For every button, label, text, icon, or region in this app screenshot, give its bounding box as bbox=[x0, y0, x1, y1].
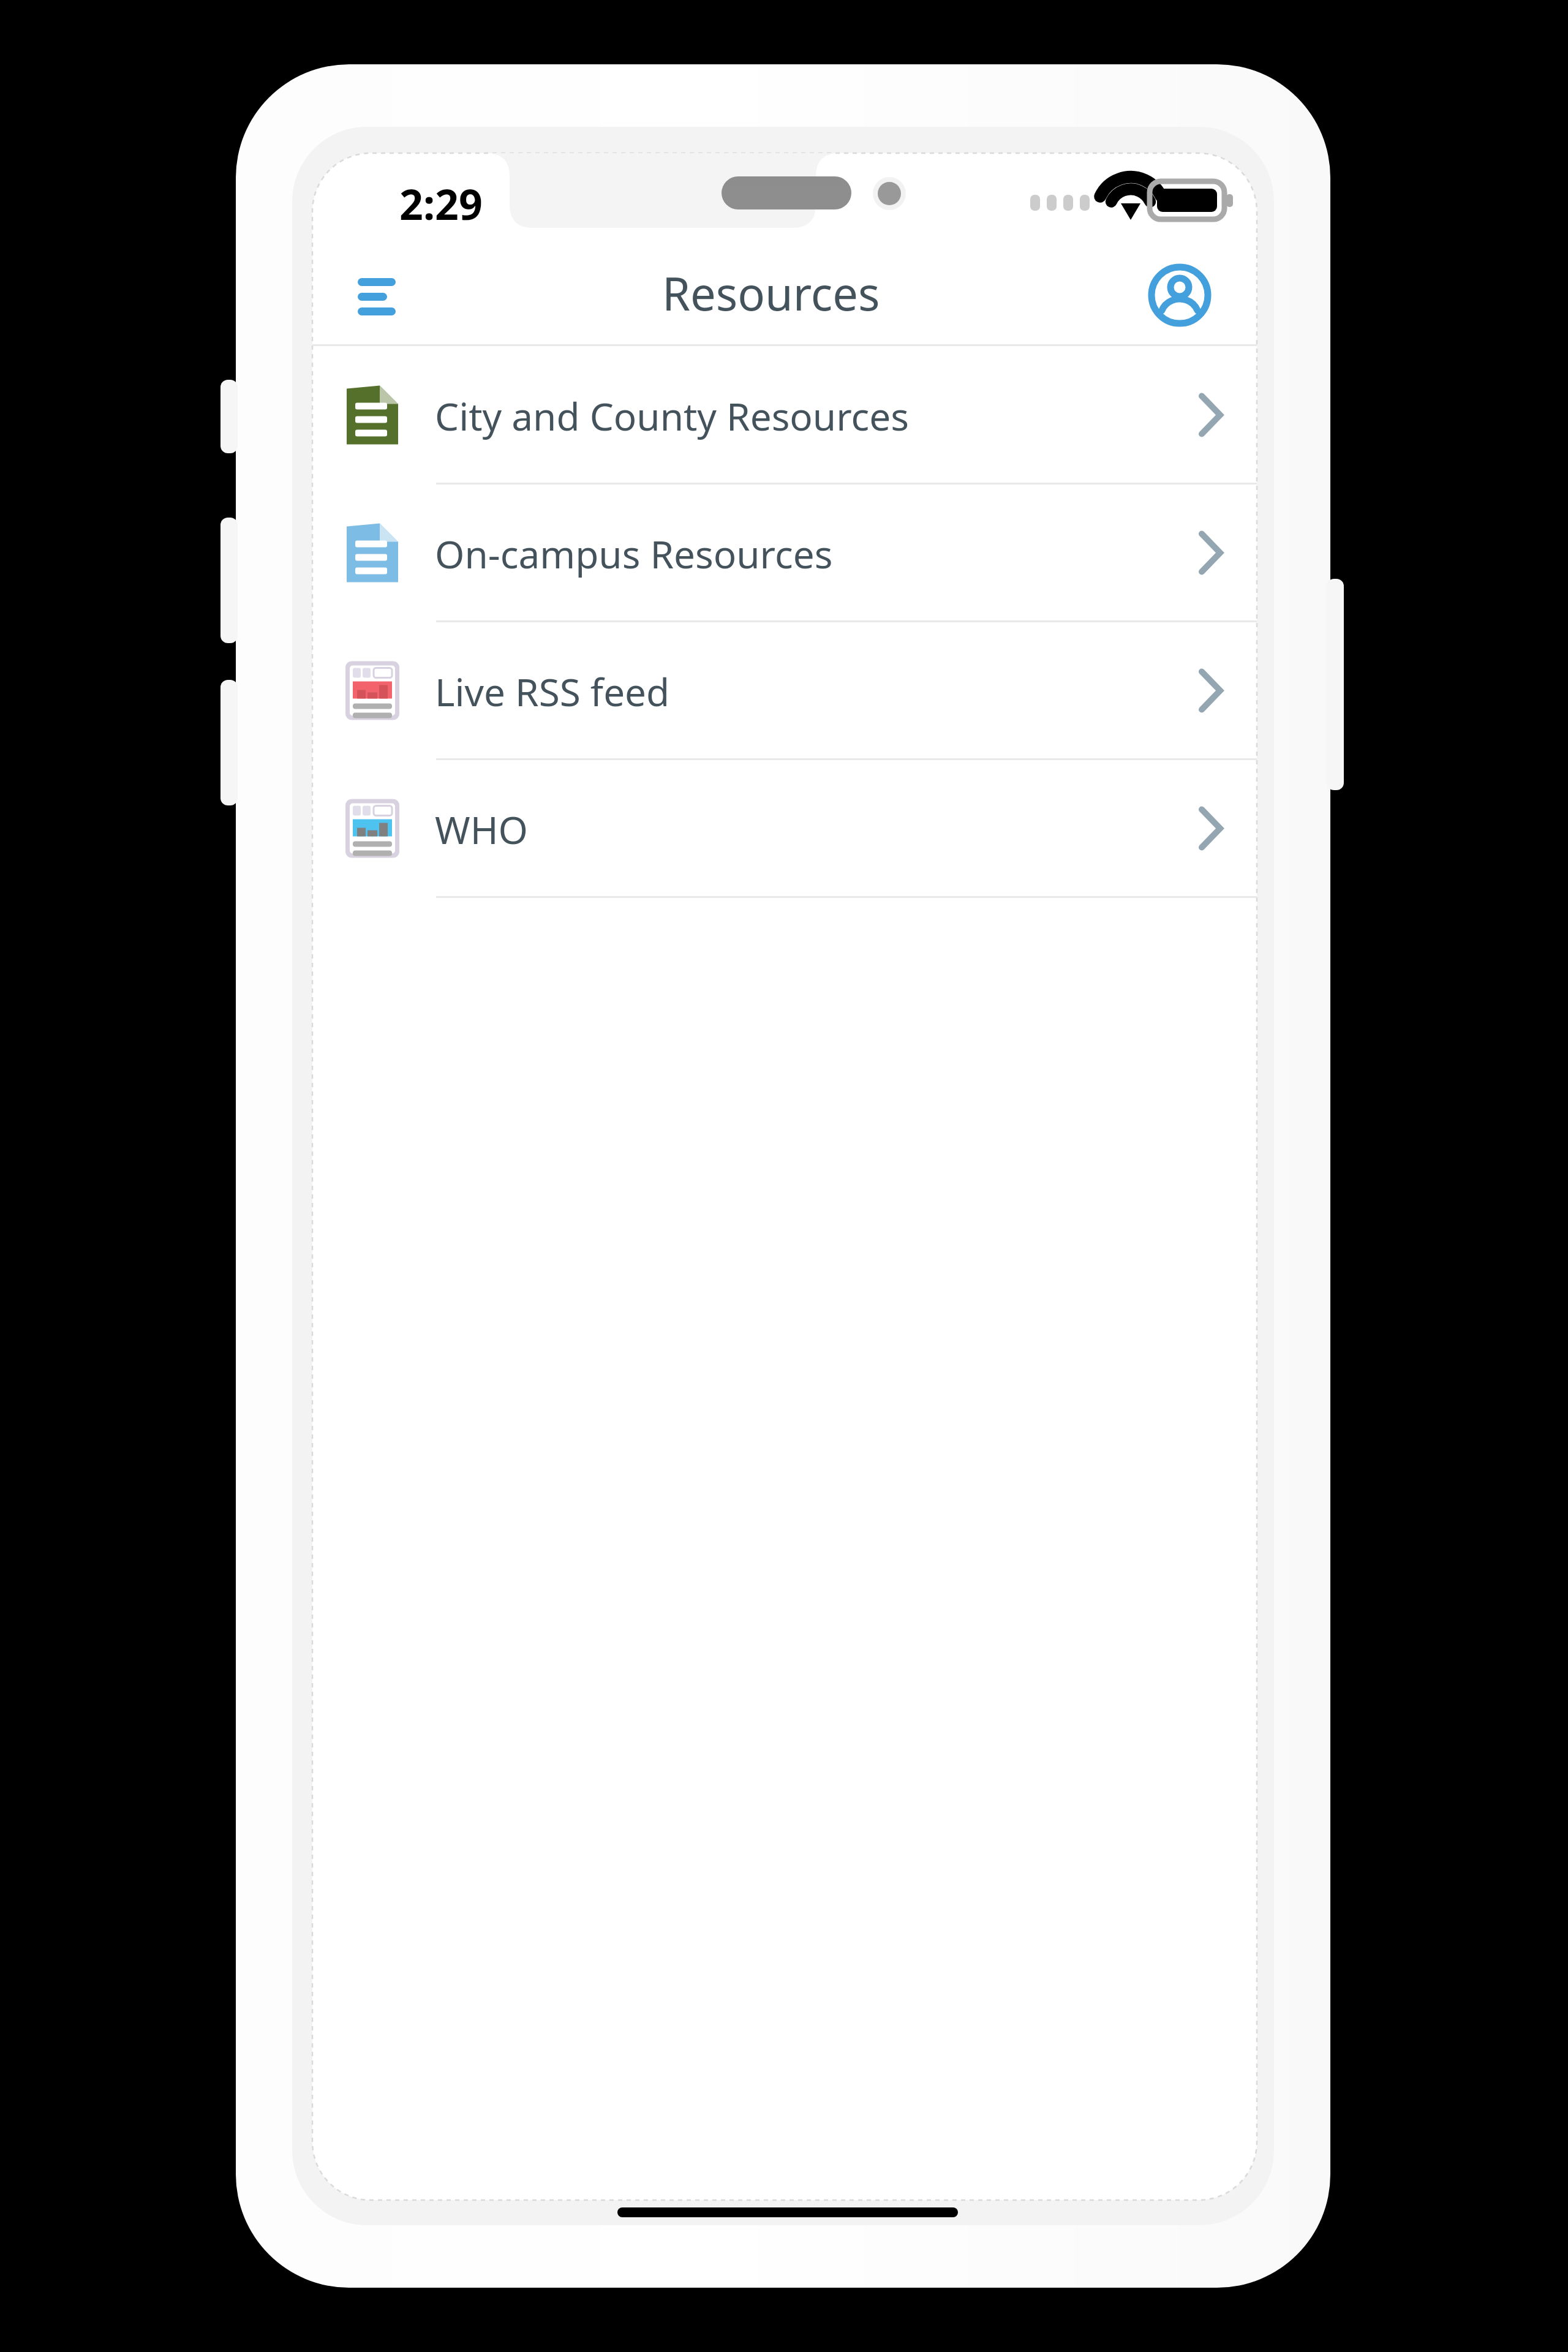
button[interactable]: Profile bbox=[1133, 249, 1226, 342]
button[interactable]: Open navigation menu bbox=[331, 256, 423, 344]
staticText: 2:29 bbox=[399, 175, 483, 232]
button[interactable]: City and County Resources bbox=[312, 346, 1257, 484]
button[interactable]: On-campus Resources bbox=[312, 484, 1257, 622]
staticText: Resources bbox=[662, 262, 880, 324]
button[interactable]: WHO bbox=[312, 759, 1257, 897]
staticText: On-campus Resources bbox=[435, 528, 833, 579]
staticText: Live RSS feed bbox=[435, 666, 670, 717]
button[interactable]: Live RSS feed bbox=[312, 622, 1257, 759]
staticText: WHO bbox=[435, 804, 529, 855]
staticText: City and County Resources bbox=[435, 390, 909, 442]
